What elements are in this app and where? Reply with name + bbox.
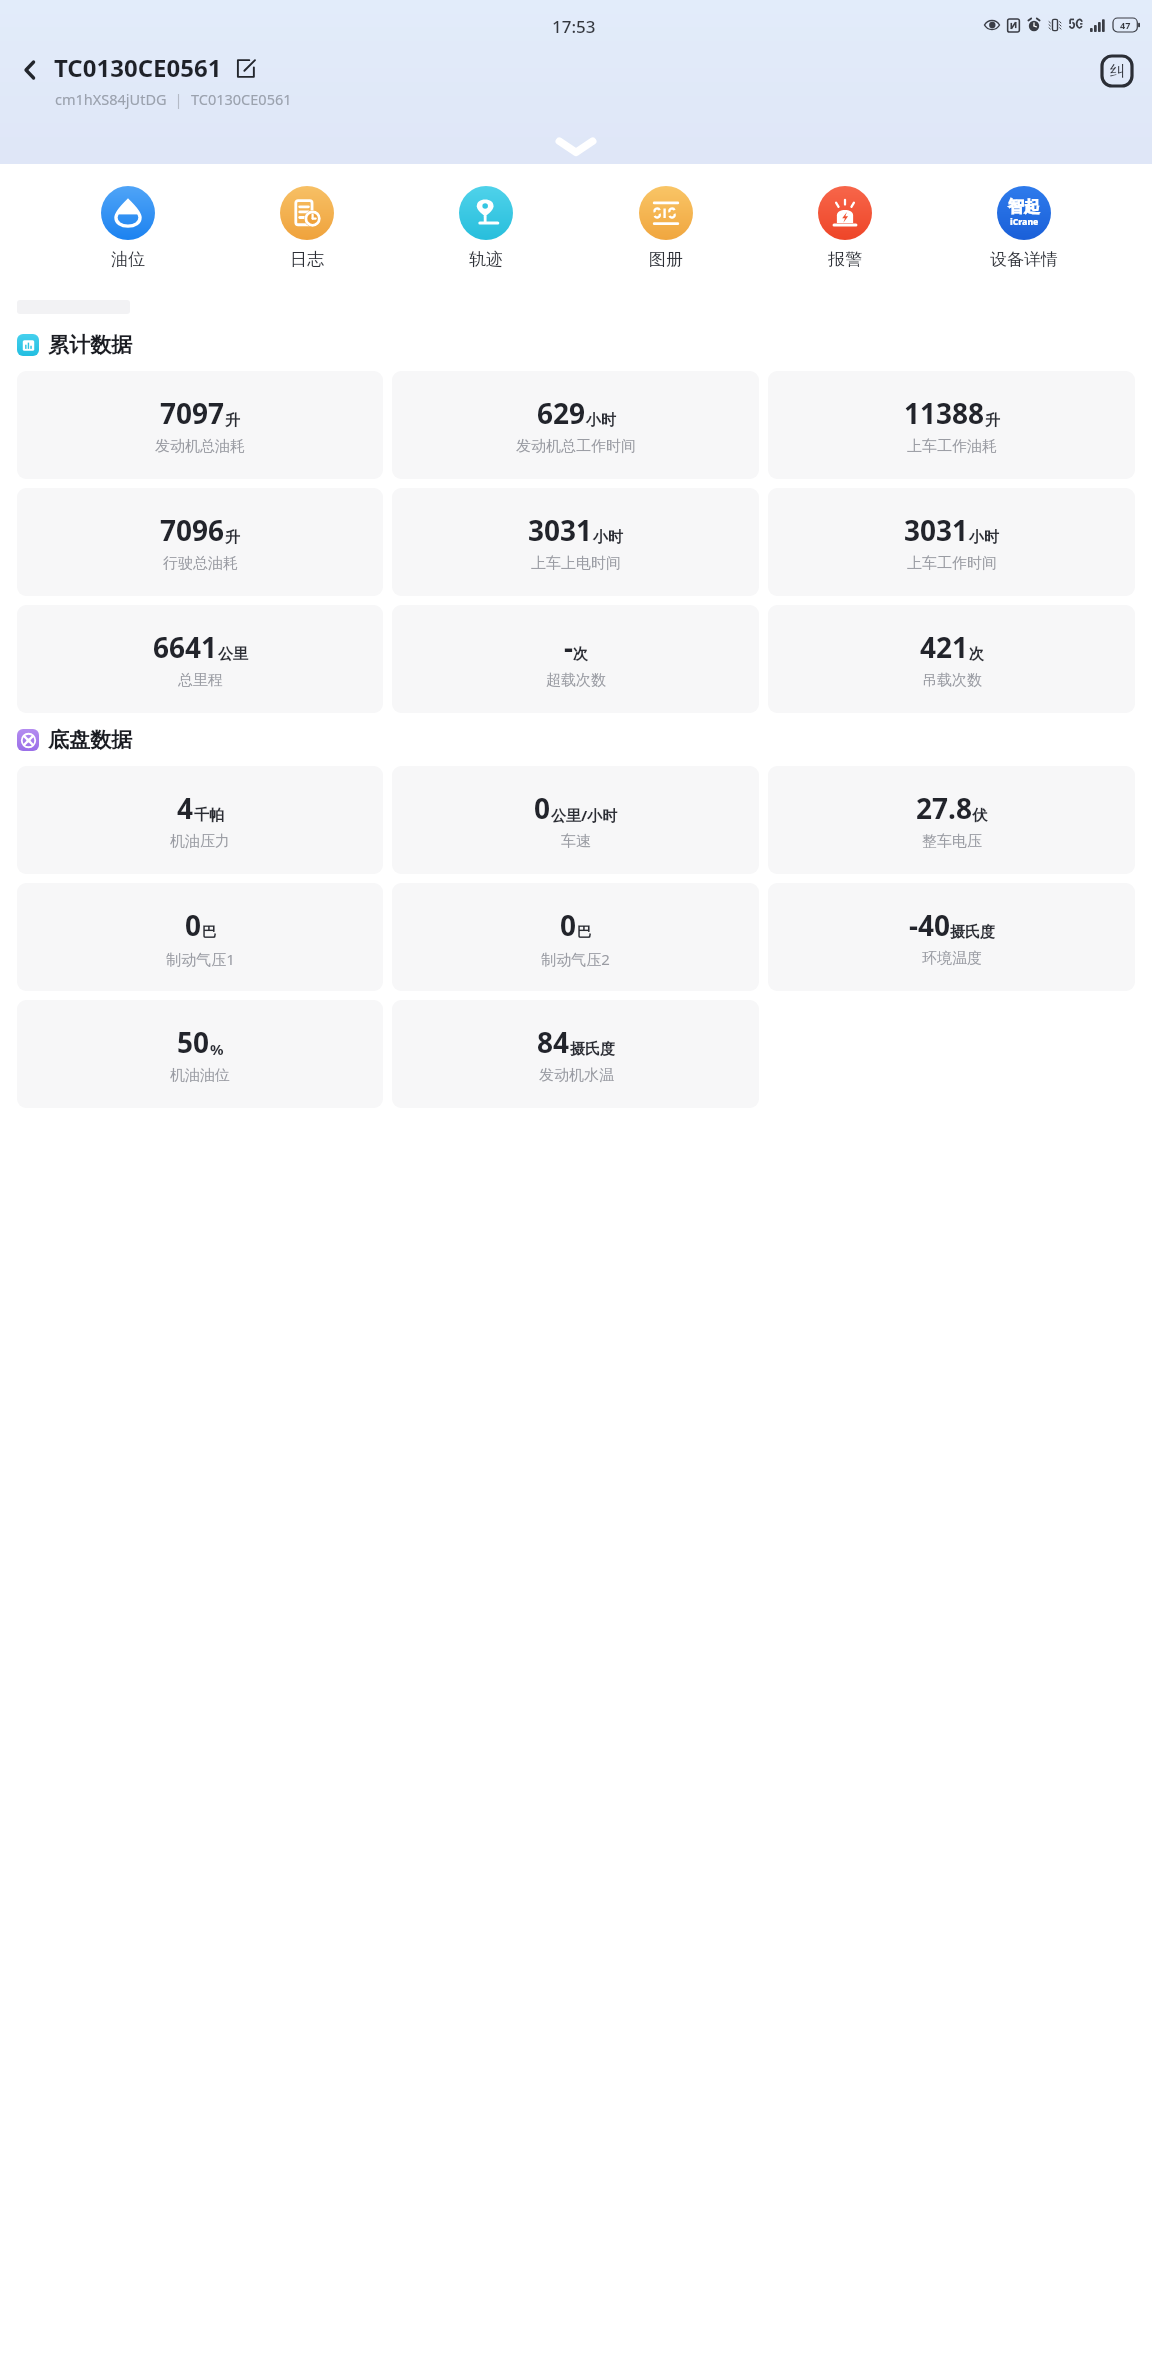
staticText: | <box>167 89 191 109</box>
staticText: 升 <box>985 411 1000 430</box>
staticText: 3031 <box>904 511 969 549</box>
button[interactable]: 累计数据 <box>17 332 1152 358</box>
staticText: 伏 <box>972 806 987 825</box>
staticText: 纠 <box>1110 62 1125 81</box>
button[interactable]: 3031 <box>768 488 1135 596</box>
staticText: 0 <box>185 906 202 944</box>
staticText: 4 <box>177 789 194 827</box>
staticText: 27.8 <box>916 789 972 827</box>
button[interactable]: 7096 <box>17 488 383 596</box>
staticText: 设备详情 <box>990 249 1058 270</box>
staticText: 轨迹 <box>469 249 503 270</box>
staticText: 上车工作时间 <box>907 554 997 573</box>
staticText: 629 <box>537 394 586 432</box>
staticText: 发动机总油耗 <box>155 437 245 456</box>
staticText: 7096 <box>160 511 225 549</box>
staticText: 累计数据 <box>48 332 132 358</box>
staticText: 421 <box>920 628 969 666</box>
staticText: 公里/小时 <box>551 805 618 825</box>
button[interactable]: TC0130CE0561 <box>54 51 258 84</box>
button[interactable]: 0 <box>392 883 759 991</box>
staticText: 油位 <box>111 249 145 270</box>
button[interactable]: 油位 <box>69 186 187 270</box>
button[interactable]: Expand <box>546 134 606 160</box>
staticText: 次 <box>573 645 588 664</box>
staticText: 上车工作油耗 <box>907 437 997 456</box>
staticText: 84 <box>537 1023 570 1061</box>
button[interactable]: 智起 <box>965 186 1083 270</box>
staticText: -40 <box>909 906 950 944</box>
staticText: 图册 <box>649 249 683 270</box>
button[interactable]: -40 <box>768 883 1135 991</box>
button[interactable]: 84 <box>392 1000 759 1108</box>
staticText: 升 <box>225 411 240 430</box>
button[interactable]: 报警 <box>786 186 904 270</box>
staticText: 0 <box>534 789 551 827</box>
other: Edit name <box>232 55 258 81</box>
staticText: 6641 <box>153 628 218 666</box>
staticText: - <box>564 628 573 666</box>
staticText: 47 <box>1120 19 1131 31</box>
staticText: 发动机水温 <box>539 1066 614 1085</box>
staticText: 17:53 <box>552 15 596 38</box>
button[interactable]: 0 <box>17 883 383 991</box>
button[interactable]: 50 <box>17 1000 383 1108</box>
staticText: 底盘数据 <box>48 727 132 753</box>
staticText: 50 <box>177 1023 210 1061</box>
staticText: 次 <box>969 645 984 664</box>
button[interactable]: 0 <box>392 766 759 874</box>
staticText: 小时 <box>586 411 616 430</box>
staticText: 智起 <box>1008 197 1040 217</box>
staticText: cm1hXS84jUtDG <box>55 89 167 109</box>
staticText: 上车上电时间 <box>531 554 621 573</box>
staticText: 机油压力 <box>170 832 230 851</box>
staticText: 小时 <box>593 528 623 547</box>
staticText: 0 <box>560 906 577 944</box>
staticText: 总里程 <box>178 671 223 690</box>
staticText: 千帕 <box>194 806 224 825</box>
staticText: 小时 <box>969 528 999 547</box>
staticText: iCrane <box>1010 216 1039 228</box>
staticText: 7097 <box>160 394 225 432</box>
staticText: TC0130CE0561 <box>191 89 292 109</box>
button[interactable]: 3031 <box>392 488 759 596</box>
staticText: 吊载次数 <box>922 671 982 690</box>
button[interactable]: 421 <box>768 605 1135 713</box>
button[interactable]: 日志 <box>248 186 366 270</box>
staticText: 摄氏度 <box>570 1040 615 1059</box>
staticText: 机油油位 <box>170 1066 230 1085</box>
staticText: 巴 <box>202 923 217 942</box>
button[interactable]: 629 <box>392 371 759 479</box>
button[interactable]: 7097 <box>17 371 383 479</box>
button[interactable]: 11388 <box>768 371 1135 479</box>
staticText: 环境温度 <box>922 949 982 968</box>
staticText: 发动机总工作时间 <box>516 437 636 456</box>
staticText: 报警 <box>828 249 862 270</box>
button[interactable]: 图册 <box>607 186 725 270</box>
staticText: % <box>210 1039 224 1059</box>
staticText: 日志 <box>290 249 324 270</box>
staticText: 制动气压1 <box>166 949 235 969</box>
button[interactable]: - <box>392 605 759 713</box>
staticText: 行驶总油耗 <box>163 554 238 573</box>
staticText: 公里 <box>218 645 248 664</box>
staticText: 巴 <box>577 923 592 942</box>
button[interactable]: 4 <box>17 766 383 874</box>
staticText: 超载次数 <box>546 671 606 690</box>
button[interactable]: Back <box>8 48 52 92</box>
staticText: 摄氏度 <box>950 923 995 942</box>
staticText: 11388 <box>904 394 985 432</box>
staticText: 整车电压 <box>922 832 982 851</box>
button[interactable]: 6641 <box>17 605 383 713</box>
staticText: 升 <box>225 528 240 547</box>
button[interactable]: 27.8 <box>768 766 1135 874</box>
button[interactable]: 底盘数据 <box>17 727 1152 753</box>
button[interactable]: 纠错 <box>1096 50 1138 92</box>
staticText: 3031 <box>528 511 593 549</box>
staticText: 制动气压2 <box>541 949 610 969</box>
button[interactable]: 轨迹 <box>427 186 545 270</box>
staticText: 车速 <box>561 832 591 851</box>
staticText: TC0130CE0561 <box>54 51 222 84</box>
